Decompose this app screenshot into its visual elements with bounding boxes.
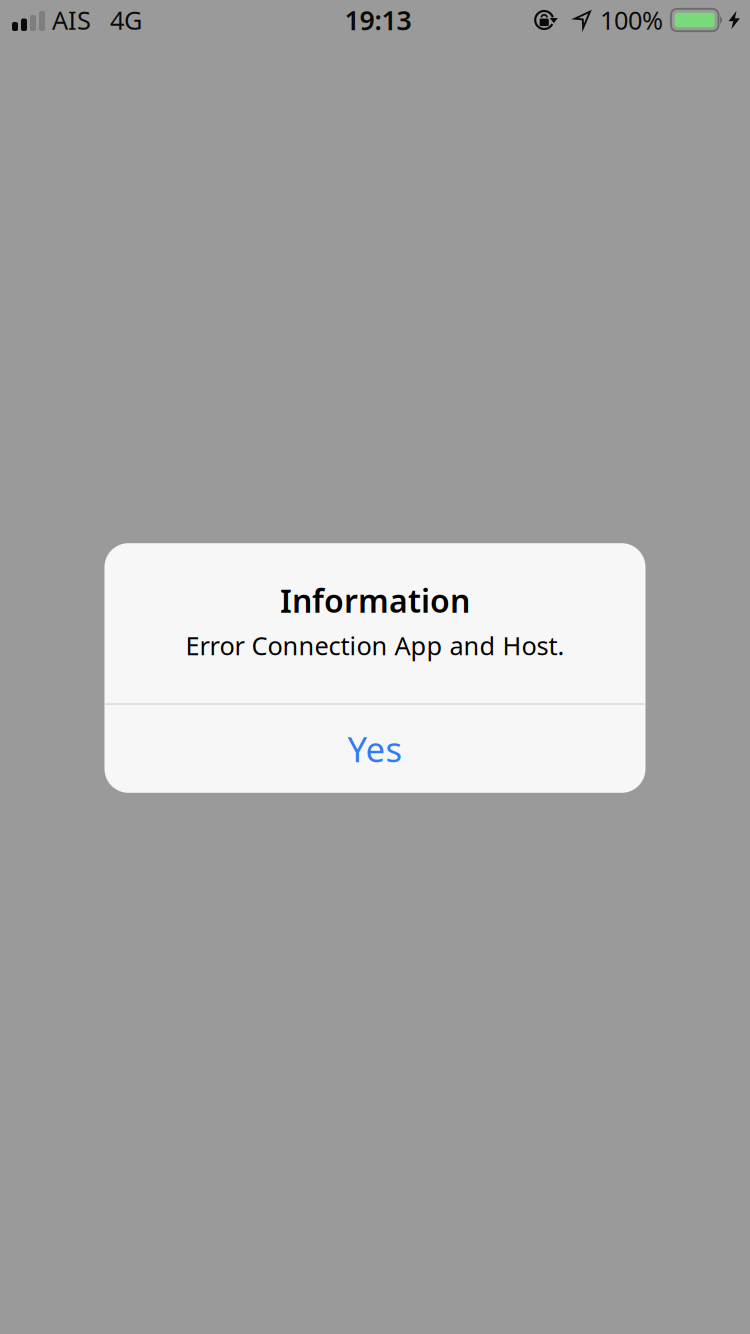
staticText: 100% [600, 3, 663, 37]
staticText: Error Connection App and Host. [185, 629, 564, 662]
staticText: 19:13 [344, 2, 411, 38]
staticText: AIS [52, 3, 91, 37]
button[interactable]: Yes [104, 705, 645, 793]
staticText: Information [280, 579, 470, 622]
staticText: Yes [347, 726, 402, 772]
staticText: 4G [110, 3, 142, 37]
